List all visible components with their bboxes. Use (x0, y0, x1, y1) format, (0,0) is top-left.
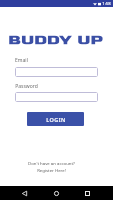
staticText: BUDDY UP (8, 34, 104, 46)
staticText: Don't have an account? (28, 160, 75, 166)
staticText: Register Here! (37, 167, 66, 173)
staticText: Password (15, 83, 38, 90)
button[interactable] (15, 92, 98, 102)
button[interactable] (15, 67, 98, 77)
staticText: Email (15, 57, 28, 64)
button[interactable]: LOGIN (27, 112, 84, 126)
button[interactable]: Recent apps (80, 186, 94, 200)
button[interactable]: Back (17, 186, 31, 200)
button[interactable]: Home (49, 186, 63, 200)
button[interactable]: Don't have an account? (0, 160, 108, 173)
staticText: LOGIN (46, 116, 66, 123)
staticText: 1:58 (102, 1, 111, 7)
